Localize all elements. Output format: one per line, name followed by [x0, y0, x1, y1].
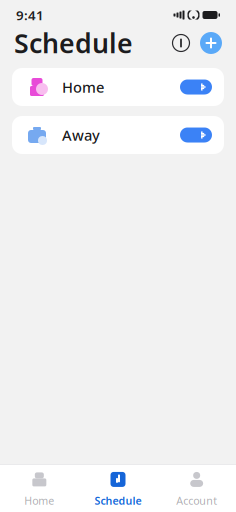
button[interactable]: Schedule [79, 465, 157, 512]
staticText: 9:41 [16, 6, 44, 24]
staticText: Home [24, 493, 54, 508]
button[interactable]: Home [12, 68, 224, 106]
button[interactable]: Away [12, 116, 224, 154]
button[interactable]: Account [157, 465, 236, 512]
button[interactable]: Add [196, 28, 226, 58]
staticText: Account [176, 493, 217, 508]
staticText: Schedule [94, 493, 141, 508]
button[interactable]: Home [0, 465, 79, 512]
staticText: Home [62, 77, 104, 97]
button[interactable]: Explore [166, 28, 196, 58]
staticText: Schedule [14, 25, 133, 61]
staticText: Away [62, 125, 100, 145]
